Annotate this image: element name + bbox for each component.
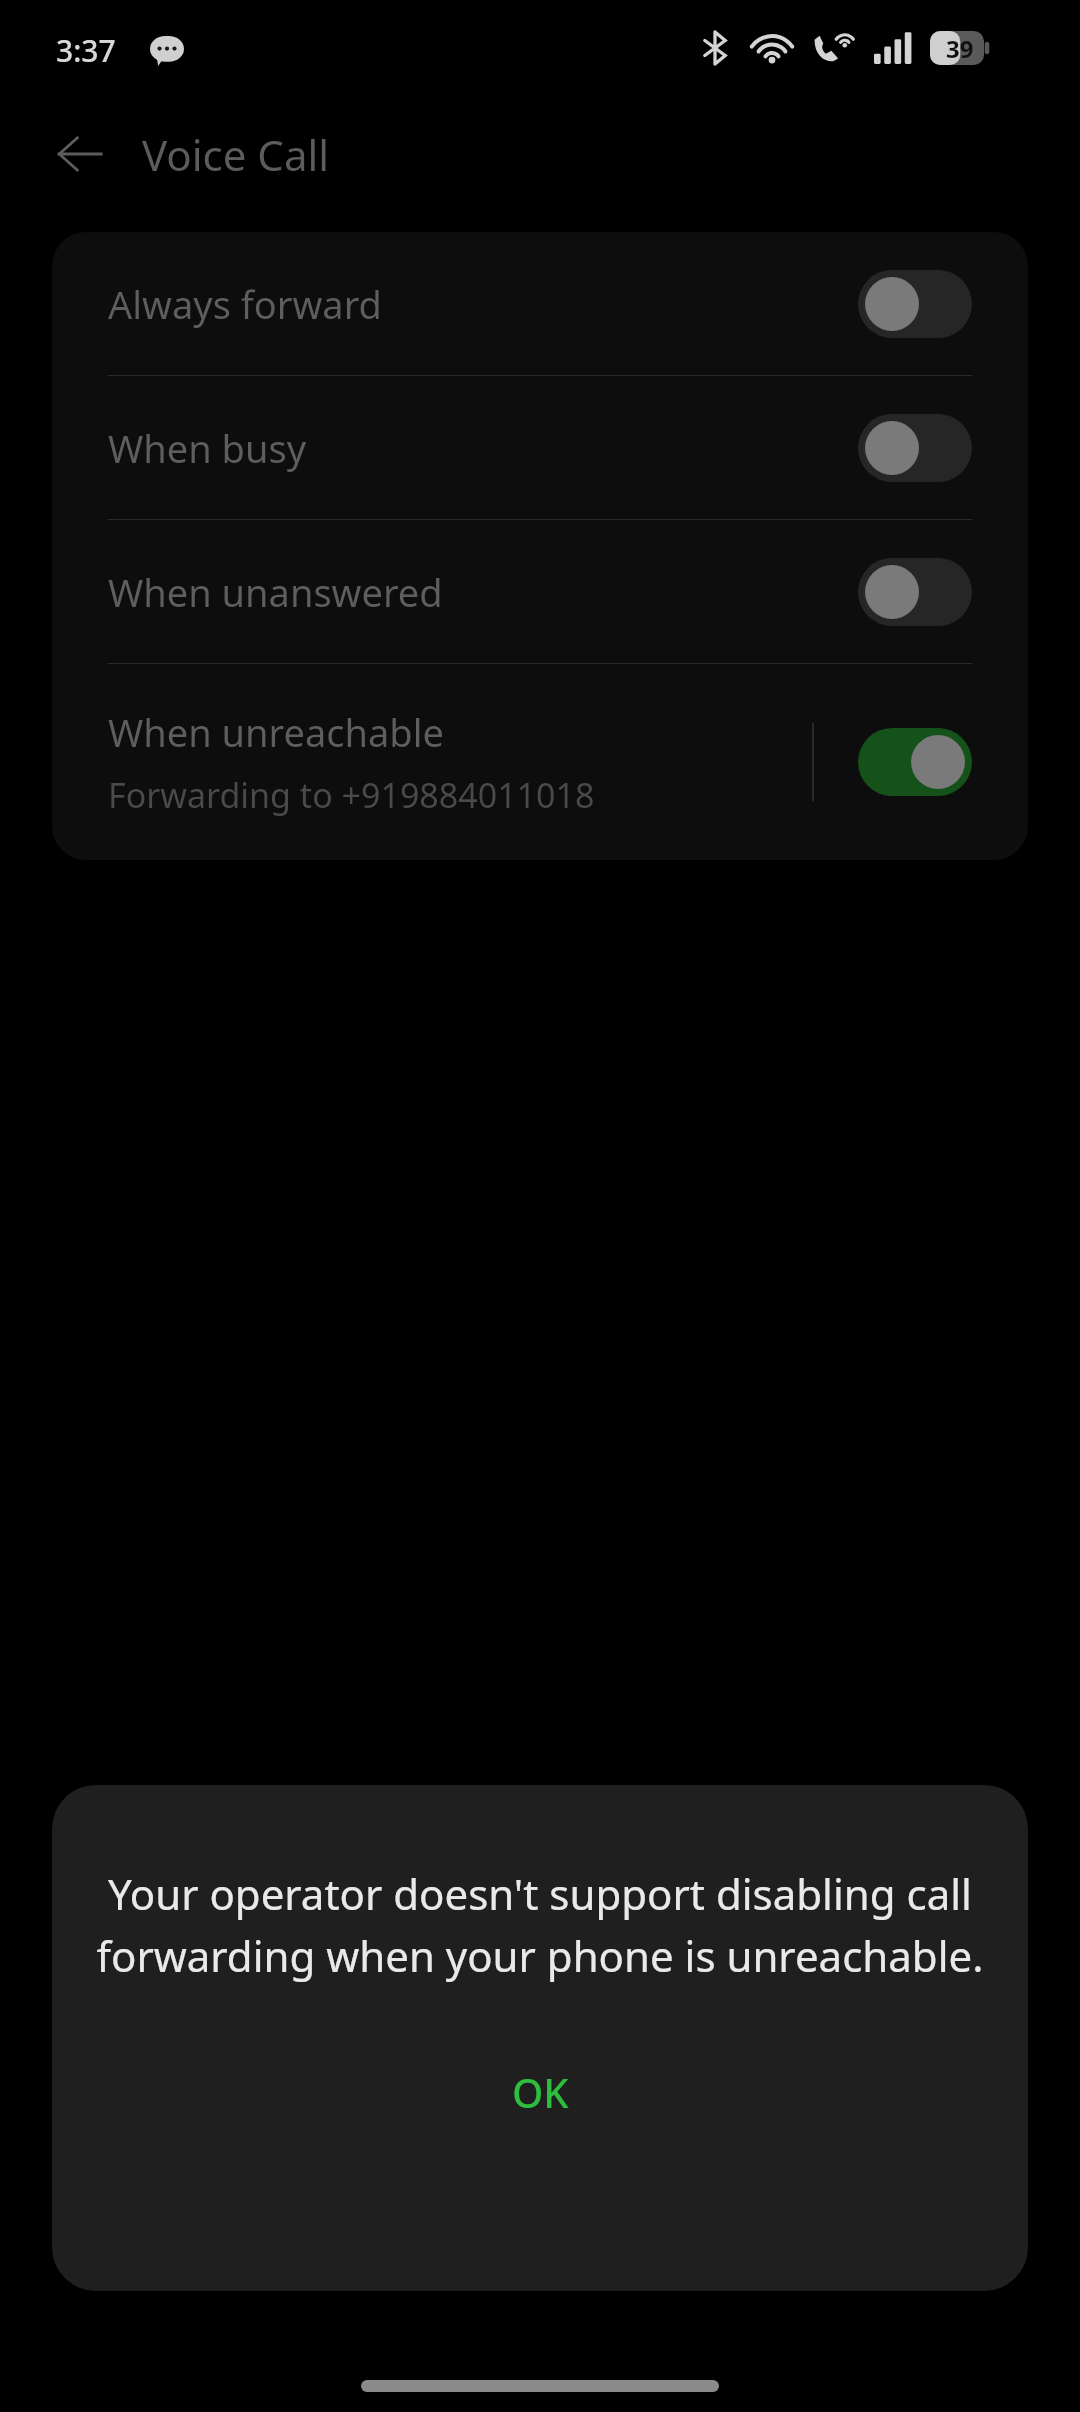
staticText: Forwarding to +919884011018	[108, 772, 595, 818]
staticText: 39	[946, 32, 974, 65]
button[interactable]: When busy	[52, 376, 1028, 519]
staticText: Voice Call	[142, 126, 330, 183]
button[interactable]: OK	[464, 2051, 617, 2133]
button[interactable]: When unreachable	[52, 664, 1028, 860]
button[interactable]: When unanswered	[52, 520, 1028, 663]
button[interactable]: Off	[858, 414, 972, 482]
staticText: When busy	[108, 422, 307, 474]
staticText: When unanswered	[108, 566, 443, 618]
staticText: 3:37	[56, 30, 116, 71]
button[interactable]: Off	[858, 558, 972, 626]
button[interactable]: Off	[858, 270, 972, 338]
staticText: Your operator doesn't support disabling …	[96, 1865, 984, 1985]
button[interactable]: Always forward	[52, 232, 1028, 375]
staticText: When unreachable	[108, 706, 444, 758]
button[interactable]: Back	[40, 114, 120, 194]
button[interactable]: On	[858, 728, 972, 796]
staticText: OK	[512, 2065, 569, 2119]
staticText: Always forward	[108, 278, 382, 330]
